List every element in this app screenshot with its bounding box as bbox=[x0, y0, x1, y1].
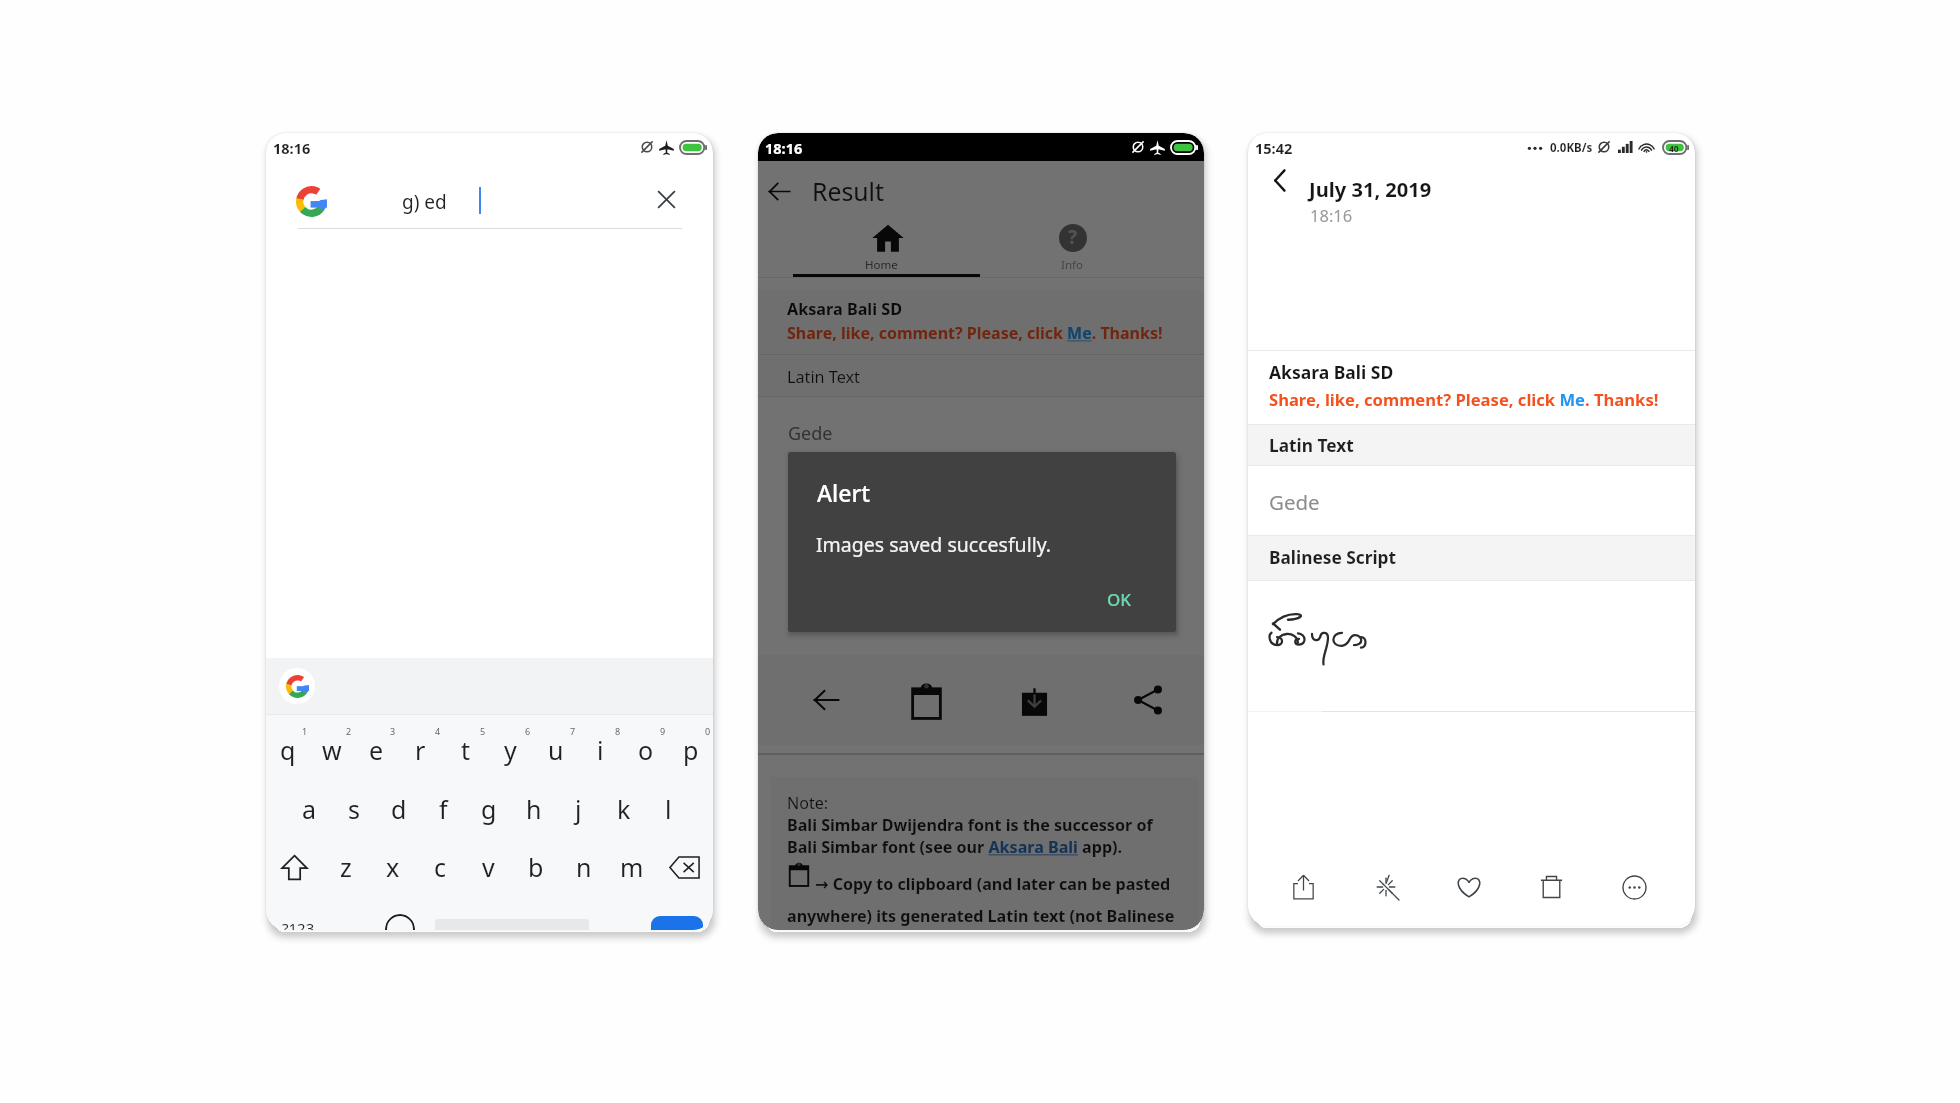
staticText: 4 bbox=[435, 725, 441, 737]
staticText: k bbox=[617, 792, 631, 826]
staticText: g bbox=[481, 792, 497, 826]
staticText: q bbox=[280, 733, 296, 767]
button[interactable]: Back bbox=[763, 175, 795, 207]
button[interactable] bbox=[1248, 351, 1695, 424]
staticText: Info bbox=[1061, 257, 1083, 273]
staticText: e bbox=[369, 733, 384, 767]
button[interactable]: r bbox=[398, 719, 443, 781]
staticText: Latin Text bbox=[1269, 434, 1354, 458]
button[interactable]: l bbox=[646, 778, 691, 840]
staticText: b bbox=[528, 850, 544, 884]
staticText: 9 bbox=[660, 725, 666, 737]
button[interactable]: z bbox=[322, 836, 369, 898]
button[interactable] bbox=[758, 290, 1204, 354]
staticText: r bbox=[415, 733, 426, 767]
staticText: Latin Text bbox=[787, 366, 860, 388]
staticText: x bbox=[386, 850, 400, 884]
button[interactable]: Delete bbox=[1510, 845, 1593, 926]
staticText: Share, like, comment? Please, click Me. … bbox=[787, 322, 1163, 344]
button[interactable]: x bbox=[369, 836, 416, 898]
staticText: l bbox=[665, 792, 672, 826]
button[interactable]: Clear bbox=[648, 181, 684, 217]
staticText: u bbox=[548, 733, 564, 767]
button[interactable]: o bbox=[623, 719, 668, 781]
button[interactable]: Google bbox=[279, 668, 315, 704]
button[interactable] bbox=[758, 356, 1204, 396]
staticText: Home bbox=[865, 257, 898, 273]
button[interactable]: Edit bbox=[1344, 845, 1427, 926]
button[interactable]: m bbox=[608, 836, 656, 898]
button[interactable]: s bbox=[331, 778, 376, 840]
button[interactable]: e bbox=[354, 719, 398, 781]
button[interactable]: OK bbox=[1097, 579, 1142, 620]
button[interactable] bbox=[1248, 425, 1695, 465]
staticText: c bbox=[434, 850, 447, 884]
button[interactable]: i bbox=[578, 719, 623, 781]
button[interactable]: u bbox=[533, 719, 578, 781]
staticText: i bbox=[597, 733, 604, 767]
staticText: d bbox=[391, 792, 407, 826]
button[interactable]: d bbox=[376, 778, 421, 840]
button[interactable]: Back bbox=[758, 655, 869, 745]
button[interactable]: Favorite bbox=[1427, 845, 1510, 926]
staticText: 18:16 bbox=[765, 138, 803, 158]
staticText: Gede bbox=[1269, 488, 1320, 516]
staticText: Bali Simbar font (see our Aksara Bali ap… bbox=[787, 836, 1123, 858]
button[interactable] bbox=[1248, 536, 1695, 580]
button[interactable]: Home tab bbox=[758, 217, 981, 278]
button[interactable]: h bbox=[511, 778, 556, 840]
button[interactable]: c bbox=[416, 836, 464, 898]
button[interactable]: p bbox=[668, 719, 713, 781]
staticText: 15:42 bbox=[1255, 138, 1293, 158]
button[interactable]: More bbox=[1593, 845, 1676, 926]
staticText: w bbox=[322, 733, 342, 767]
button[interactable]: Save bbox=[980, 655, 1092, 745]
staticText: f bbox=[439, 792, 448, 826]
staticText: 0.0KB/s bbox=[1550, 140, 1593, 156]
staticText: Gede bbox=[788, 421, 833, 446]
button[interactable]: k bbox=[601, 778, 646, 840]
button[interactable]: y bbox=[488, 719, 533, 781]
staticText: 6 bbox=[525, 725, 531, 737]
button[interactable]: v bbox=[464, 836, 512, 898]
button[interactable]: a bbox=[287, 778, 331, 840]
staticText: July 31, 2019 bbox=[1309, 176, 1432, 203]
button[interactable]: g bbox=[466, 778, 511, 840]
button[interactable]: q bbox=[266, 719, 310, 781]
button[interactable]: Shift bbox=[266, 836, 322, 898]
staticText: Note: bbox=[787, 792, 829, 814]
staticText: g) ed bbox=[402, 189, 447, 215]
staticText: Balinese Script bbox=[1269, 546, 1397, 570]
staticText: 18:16 bbox=[273, 138, 311, 158]
staticText: h bbox=[526, 792, 542, 826]
button[interactable]: f bbox=[421, 778, 466, 840]
staticText: Aksara Bali SD bbox=[1269, 360, 1394, 384]
staticText: s bbox=[348, 792, 360, 826]
staticText: Bali Simbar Dwijendra font is the succes… bbox=[787, 814, 1153, 836]
staticText: v bbox=[482, 850, 495, 884]
button[interactable]: j bbox=[556, 778, 601, 840]
staticText: 1 bbox=[302, 725, 308, 737]
button[interactable]: Back bbox=[1265, 165, 1295, 195]
staticText: OK bbox=[1107, 588, 1132, 611]
button[interactable]: w bbox=[310, 719, 354, 781]
button[interactable]: b bbox=[512, 836, 560, 898]
staticText: 2 bbox=[346, 725, 352, 737]
staticText: 3 bbox=[390, 725, 396, 737]
staticText: z bbox=[340, 850, 352, 884]
button[interactable]: Share bbox=[1262, 845, 1344, 926]
staticText: Aksara Bali SD bbox=[787, 298, 902, 320]
staticText: o bbox=[638, 733, 654, 767]
staticText: j bbox=[575, 792, 582, 826]
button[interactable]: Backspace bbox=[656, 836, 713, 898]
button[interactable]: Info tab bbox=[981, 217, 1204, 278]
button[interactable]: n bbox=[560, 836, 608, 898]
staticText: y bbox=[504, 733, 517, 767]
staticText: 18:16 bbox=[1310, 204, 1353, 226]
button[interactable]: t bbox=[443, 719, 488, 781]
staticText: Alert bbox=[817, 477, 871, 508]
staticText: 0 bbox=[705, 725, 711, 737]
button[interactable]: Copy bbox=[869, 655, 980, 745]
staticText: ? bbox=[1068, 224, 1078, 250]
button[interactable]: Share bbox=[1092, 655, 1204, 745]
